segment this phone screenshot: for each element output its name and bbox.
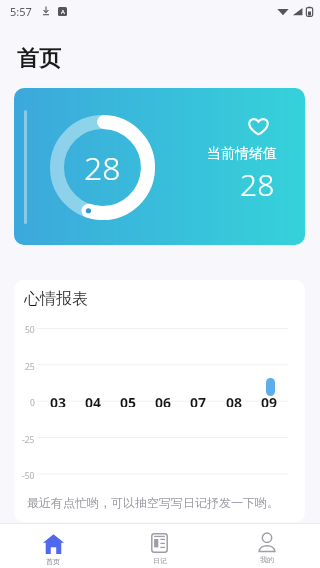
staticText: 04 [85, 393, 102, 407]
button[interactable]: 28 [14, 88, 305, 245]
staticText: 首页 [46, 557, 60, 566]
button[interactable]: 我的 [213, 524, 320, 568]
staticText: 06 [155, 393, 172, 407]
staticText: 50 [25, 324, 35, 336]
staticText: 我的 [260, 555, 274, 564]
staticText: -50 [22, 470, 35, 482]
staticText: 05 [120, 393, 137, 407]
staticText: 心情报表 [24, 289, 88, 309]
staticText: 最近有点忙哟，可以抽空写写日记抒发一下哟。 [27, 495, 279, 510]
staticText: -25 [22, 434, 35, 446]
staticText: 28 [240, 164, 275, 205]
button[interactable]: 日记 [106, 524, 213, 568]
staticText: 09 [261, 393, 278, 407]
staticText: 当前情绪值 [207, 145, 277, 163]
staticText: 日记 [153, 556, 167, 565]
staticText: 07 [190, 393, 207, 407]
staticText: 28 [84, 146, 121, 190]
staticText: 03 [50, 393, 67, 407]
staticText: 25 [25, 361, 35, 373]
staticText: 5:57 [10, 4, 32, 19]
staticText: 0 [30, 397, 35, 409]
staticText: 首页 [17, 45, 61, 73]
staticText: 08 [226, 393, 243, 407]
button[interactable]: 首页 [0, 524, 106, 568]
staticText: A [61, 8, 65, 16]
